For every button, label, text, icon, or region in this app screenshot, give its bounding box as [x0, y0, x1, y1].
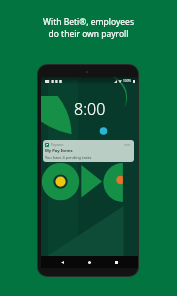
button[interactable]: Recent apps: [111, 257, 122, 268]
staticText: With Beti®, employees do their own payro…: [43, 16, 134, 40]
button[interactable]: Back: [57, 257, 68, 268]
staticText: 100%: [123, 79, 132, 83]
staticText: now: [124, 143, 131, 147]
button[interactable]: Home: [84, 257, 95, 268]
staticText: Paycom: [51, 142, 64, 147]
staticText: You have 4 pending tasks: [45, 155, 92, 160]
button[interactable]: Paycom: [43, 140, 134, 162]
staticText: 8:00: [74, 98, 106, 120]
staticText: My Pay Items: [45, 148, 73, 154]
